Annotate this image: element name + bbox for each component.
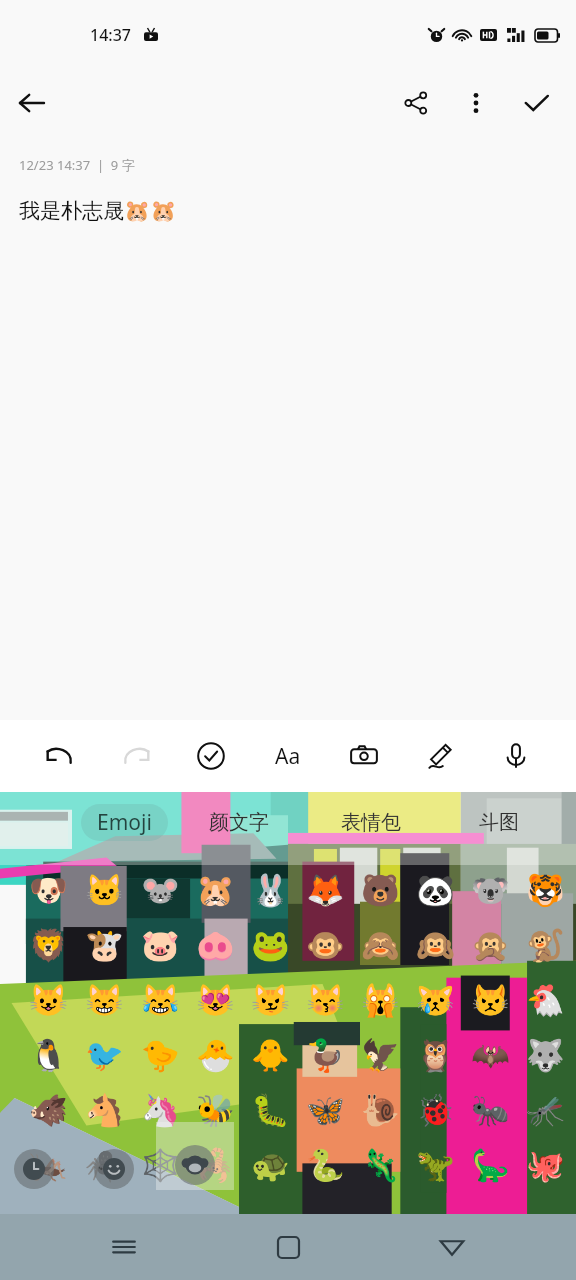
button[interactable]: 🦕: [463, 1137, 518, 1192]
staticText: 😸: [85, 982, 124, 1018]
button[interactable]: Back: [0, 70, 64, 136]
button[interactable]: 🐙: [518, 1137, 573, 1192]
button[interactable]: Back: [412, 1217, 492, 1277]
staticText: 🕸: [141, 1147, 180, 1183]
button[interactable]: More options: [446, 70, 506, 136]
button[interactable]: 🦋: [298, 1082, 353, 1137]
button[interactable]: 🐱: [76, 862, 132, 917]
staticText: 🐭: [141, 872, 180, 908]
button[interactable]: 🐰: [243, 862, 298, 917]
button[interactable]: 🦇: [463, 1027, 518, 1082]
button[interactable]: Animals and nature: [156, 1122, 234, 1190]
button[interactable]: 🐧: [20, 1027, 76, 1082]
button[interactable]: 🦁: [20, 917, 76, 972]
button[interactable]: 🦆: [298, 1027, 353, 1082]
button[interactable]: 🐹: [188, 862, 243, 917]
button[interactable]: 😺: [20, 972, 76, 1027]
button[interactable]: 🐽: [188, 917, 243, 972]
button[interactable]: 🐦: [76, 1027, 132, 1082]
button[interactable]: 🐌: [353, 1082, 408, 1137]
button[interactable]: 斗图: [479, 810, 519, 835]
button[interactable]: Emoji: [81, 804, 168, 841]
button[interactable]: 🦂: [188, 1137, 243, 1192]
button[interactable]: Recent apps: [84, 1217, 164, 1277]
button[interactable]: 🦎: [353, 1137, 408, 1192]
button[interactable]: 🐝: [188, 1082, 243, 1137]
button[interactable]: 🐸: [243, 917, 298, 972]
staticText: 🐹: [196, 872, 235, 908]
button[interactable]: 🐤: [132, 1027, 188, 1082]
button[interactable]: 🐛: [243, 1082, 298, 1137]
button[interactable]: Redo: [110, 730, 162, 782]
button[interactable]: 🐜: [463, 1082, 518, 1137]
button[interactable]: 🐵: [298, 917, 353, 972]
button[interactable]: 🐺: [518, 1027, 573, 1082]
button[interactable]: Share: [386, 70, 446, 136]
button[interactable]: Camera: [338, 730, 390, 782]
button[interactable]: 🐶: [20, 862, 76, 917]
staticText: 😻: [196, 982, 235, 1018]
button[interactable]: 🐻: [353, 862, 408, 917]
button[interactable]: 🐯: [518, 862, 573, 917]
button[interactable]: 🕷: [76, 1137, 132, 1192]
staticText: 🐜: [471, 1092, 510, 1128]
button[interactable]: 😻: [188, 972, 243, 1027]
button[interactable]: Voice: [490, 730, 542, 782]
button[interactable]: 🦗: [20, 1137, 76, 1192]
button[interactable]: 🦉: [408, 1027, 463, 1082]
button[interactable]: 🐒: [518, 917, 573, 972]
button[interactable]: 😾: [463, 972, 518, 1027]
button[interactable]: 🐗: [20, 1082, 76, 1137]
button[interactable]: 🙊: [463, 917, 518, 972]
staticText: 🐒: [526, 927, 565, 963]
staticText: 🐺: [526, 1037, 565, 1073]
button[interactable]: 🐨: [463, 862, 518, 917]
button[interactable]: 😼: [243, 972, 298, 1027]
staticText: 🐍: [306, 1147, 345, 1183]
button[interactable]: 😸: [76, 972, 132, 1027]
button[interactable]: 🦄: [132, 1082, 188, 1137]
button[interactable]: 🐔: [518, 972, 573, 1027]
button[interactable]: 🐷: [132, 917, 188, 972]
button[interactable]: 🦊: [298, 862, 353, 917]
button[interactable]: Home: [248, 1217, 328, 1277]
button[interactable]: Recent: [14, 1149, 54, 1189]
button[interactable]: 🦖: [408, 1137, 463, 1192]
button[interactable]: 颜文字: [209, 810, 269, 835]
button[interactable]: Aa: [262, 730, 314, 782]
button[interactable]: 😹: [132, 972, 188, 1027]
button[interactable]: Undo: [34, 730, 86, 782]
staticText: 14:37: [90, 24, 131, 46]
button[interactable]: 😽: [298, 972, 353, 1027]
button[interactable]: 🐼: [408, 862, 463, 917]
staticText: 我是朴志晟🐹🐹: [19, 198, 177, 224]
button[interactable]: 🙀: [353, 972, 408, 1027]
button[interactable]: 🦅: [353, 1027, 408, 1082]
button[interactable]: 🐣: [188, 1027, 243, 1082]
button[interactable]: 🕸: [132, 1137, 188, 1192]
button[interactable]: Checklist: [185, 730, 237, 782]
staticText: 😹: [141, 982, 180, 1018]
button[interactable]: Smileys: [94, 1149, 134, 1189]
staticText: 🐻: [361, 872, 400, 908]
staticText: 🦎: [361, 1147, 400, 1183]
button[interactable]: 🦟: [518, 1082, 573, 1137]
button[interactable]: 🐮: [76, 917, 132, 972]
button[interactable]: 🙉: [408, 917, 463, 972]
staticText: 😼: [251, 982, 290, 1018]
button[interactable]: 表情包: [341, 810, 401, 835]
button[interactable]: 😿: [408, 972, 463, 1027]
button[interactable]: 🐭: [132, 862, 188, 917]
button[interactable]: 🐍: [298, 1137, 353, 1192]
button[interactable]: Draw: [414, 730, 466, 782]
button[interactable]: 🙈: [353, 917, 408, 972]
staticText: 🙉: [416, 927, 455, 963]
staticText: 🦂: [196, 1147, 235, 1183]
button[interactable]: Done: [506, 70, 566, 136]
button[interactable]: 🐴: [76, 1082, 132, 1137]
button[interactable]: 🐢: [243, 1137, 298, 1192]
button[interactable]: 🐥: [243, 1027, 298, 1082]
staticText: 🦗: [29, 1147, 68, 1183]
button[interactable]: 🐞: [408, 1082, 463, 1137]
staticText: 🐞: [416, 1092, 455, 1128]
